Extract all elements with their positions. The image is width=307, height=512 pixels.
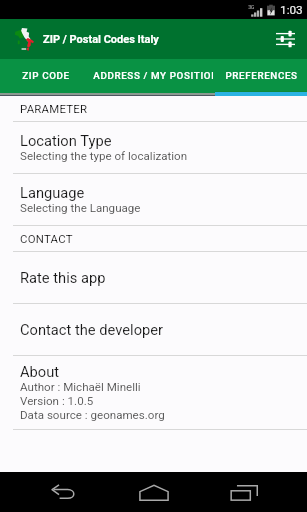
staticText: PARAMETER bbox=[20, 102, 88, 115]
staticText: About bbox=[20, 363, 60, 380]
button[interactable]: ADDRESS / MY POSITION bbox=[91, 59, 215, 91]
button[interactable]: PREFERENCES bbox=[215, 59, 307, 91]
button[interactable]: Recent apps bbox=[199, 472, 290, 512]
staticText: Language bbox=[20, 184, 85, 201]
button[interactable]: Home bbox=[108, 472, 199, 512]
staticText: ZIP CODE bbox=[22, 70, 70, 81]
button[interactable]: Rate this app bbox=[0, 252, 307, 304]
staticText: Version : 1.0.5 bbox=[20, 394, 94, 408]
staticText: Data source : geonames.org bbox=[20, 408, 165, 422]
staticText: Rate this app bbox=[20, 269, 106, 286]
button[interactable]: Settings bbox=[265, 19, 305, 59]
staticText: Selecting the type of localization bbox=[20, 149, 188, 163]
staticText: Location Type bbox=[20, 132, 112, 149]
staticText: PREFERENCES bbox=[225, 70, 298, 81]
staticText: 1:03 bbox=[280, 3, 303, 17]
button[interactable]: Contact the developer bbox=[0, 304, 307, 356]
staticText: ZIP / Postal Codes Italy bbox=[43, 33, 159, 46]
staticText: ADDRESS / MY POSITION bbox=[93, 70, 213, 81]
staticText: CONTACT bbox=[20, 232, 73, 245]
button[interactable]: Language bbox=[0, 174, 307, 226]
staticText: Selecting the Language bbox=[20, 201, 141, 215]
staticText: Author : Michaël Minelli bbox=[20, 380, 141, 394]
button[interactable]: Location Type bbox=[0, 122, 307, 174]
button[interactable]: Back bbox=[17, 472, 108, 512]
button[interactable]: ZIP CODE bbox=[0, 59, 91, 91]
button[interactable]: About bbox=[0, 356, 307, 430]
staticText: Contact the developer bbox=[20, 321, 164, 338]
